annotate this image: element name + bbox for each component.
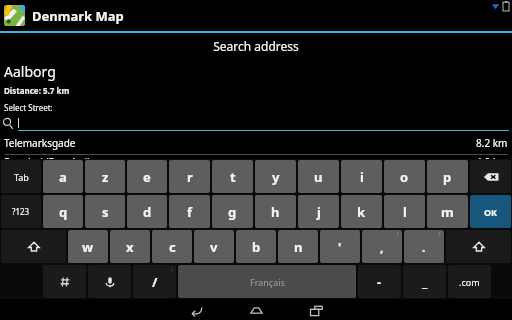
staticText: . [422,239,426,255]
button[interactable]: ?123 [1,195,41,228]
staticText: q [59,203,68,221]
button[interactable]: o [384,160,425,193]
staticText: Denmark Map [32,7,124,25]
button[interactable]: q [43,195,83,228]
staticText: : [355,230,357,238]
button[interactable]: Fyrrehøj (Fyrrehoj) [4,155,508,159]
staticText: : [171,265,173,273]
staticText: p [443,168,452,186]
button[interactable]: Denmark Map [4,5,124,26]
staticText: _ [422,273,428,291]
button[interactable]: Telemarksgade [4,131,508,154]
staticText: v [210,238,218,256]
staticText: Aalborg [4,62,56,81]
button[interactable]: , [362,230,402,263]
button[interactable]: p [427,160,468,193]
button[interactable]: d [127,195,167,228]
staticText: i [360,168,364,186]
button[interactable]: u [298,160,339,193]
staticText: Français [250,276,285,288]
staticText: ?123 [12,206,30,217]
staticText: Fyrrehøj (Fyrrehoj) [4,155,476,159]
staticText: d [143,203,152,221]
staticText: ? [438,230,441,238]
staticText: , [380,239,384,255]
button[interactable]: c [152,230,192,263]
staticText: 8.2 km [476,136,508,150]
button[interactable]: Backspace [470,160,511,193]
button[interactable]: g [212,195,253,228]
button[interactable]: .com [448,265,491,298]
staticText: a [59,168,67,186]
staticText: - [377,273,382,291]
staticText: ! [397,230,399,238]
staticText: z [102,168,109,186]
button[interactable]: Back [175,300,217,320]
staticText: 4.9 km [476,155,508,159]
button[interactable]: a [43,160,83,193]
staticText: OK [484,206,498,218]
staticText: r [187,168,193,186]
button[interactable]: Shift [1,230,66,263]
button[interactable]: w [68,230,108,263]
staticText: g [228,203,237,221]
staticText: y [272,168,280,186]
staticText: Tab [14,171,29,183]
button[interactable]: ' [320,230,360,263]
button[interactable]: n [278,230,318,263]
button[interactable]: t [212,160,253,193]
staticText: s [102,203,109,221]
staticText: t [230,168,236,186]
button[interactable]: Home [235,300,277,320]
button[interactable]: f [169,195,210,228]
staticText: w [82,238,94,256]
staticText: f [187,203,193,221]
button[interactable]: h [255,195,296,228]
staticText: x [126,238,134,256]
staticText: e [143,168,151,186]
staticText: l [403,203,407,221]
button[interactable]: e [127,160,167,193]
button[interactable]: _ [403,265,446,298]
button[interactable]: . [404,230,444,263]
staticText: n [294,238,303,256]
button[interactable]: m [427,195,468,228]
staticText: Select Street: [4,102,53,113]
staticText: / [152,273,158,291]
staticText: m [441,203,454,221]
staticText: Distance: 5.7 km [4,85,70,96]
staticText: j [317,203,321,221]
button[interactable]: Français [178,265,356,298]
button[interactable]: / [133,265,176,298]
button[interactable]: i [341,160,382,193]
button[interactable]: v [194,230,234,263]
button[interactable]: z [85,160,125,193]
staticText: b [252,238,261,256]
button[interactable]: OK [470,195,511,228]
staticText: h [271,203,280,221]
button[interactable]: b [236,230,276,263]
button[interactable]: r [169,160,210,193]
button[interactable]: Tab [1,160,41,193]
staticText: .com [459,276,480,288]
staticText: Telemarksgade [4,136,476,150]
button[interactable]: l [384,195,425,228]
button[interactable]: Shift [446,230,511,263]
button[interactable]: s [85,195,125,228]
button[interactable]: j [298,195,339,228]
button[interactable]: k [341,195,382,228]
staticText: u [314,168,323,186]
staticText: Search address [0,38,512,54]
staticText: ' [338,239,342,255]
button[interactable]: Input method [43,265,86,298]
button[interactable]: Recent apps [295,300,337,320]
button[interactable]: - [358,265,401,298]
button[interactable] [0,115,512,131]
button[interactable]: y [255,160,296,193]
button[interactable]: Voice input [88,265,131,298]
staticText: o [400,168,409,186]
staticText: c [169,238,176,256]
staticText: k [357,203,366,221]
button[interactable]: x [110,230,150,263]
